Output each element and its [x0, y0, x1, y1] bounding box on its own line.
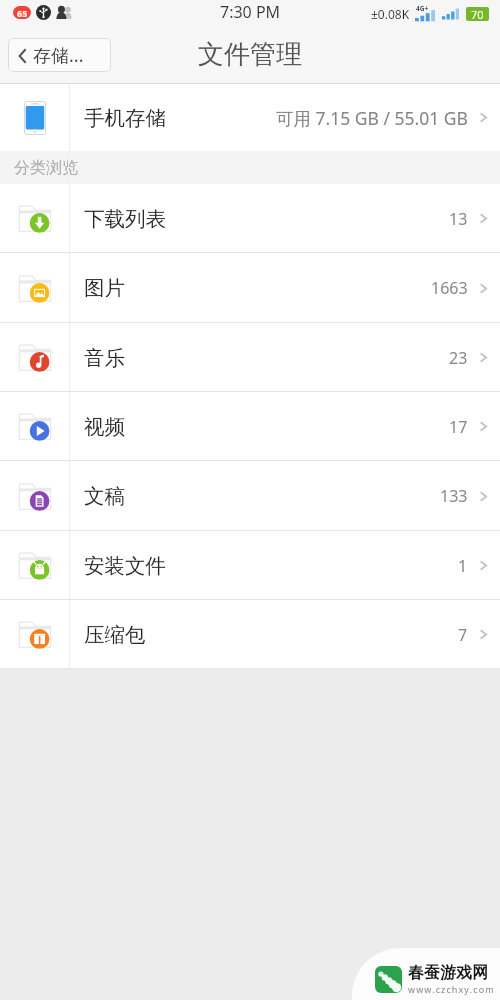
staticText: 65	[17, 7, 28, 19]
button[interactable]: 视频	[0, 392, 500, 461]
staticText: 17	[449, 416, 468, 438]
staticText: 1663	[431, 277, 468, 299]
staticText: 13	[449, 208, 468, 230]
staticText: 7:30 PM	[220, 1, 281, 23]
staticText: 可用 7.15 GB / 55.01 GB	[276, 106, 468, 130]
staticText: ±0.08K	[371, 6, 410, 22]
staticText: 70	[471, 7, 484, 21]
staticText: 下载列表	[84, 206, 166, 232]
staticText: 音乐	[84, 345, 125, 371]
staticText: 1	[458, 555, 468, 577]
staticText: 视频	[84, 414, 125, 440]
staticText: 图片	[84, 275, 125, 301]
staticText: 分类浏览	[14, 158, 78, 178]
staticText: 手机存储	[84, 105, 166, 131]
staticText: 文件管理	[198, 38, 302, 71]
staticText: 23	[449, 347, 468, 369]
button[interactable]: 安装文件	[0, 531, 500, 600]
staticText: 压缩包	[84, 622, 146, 648]
staticText: 133	[440, 485, 468, 507]
button[interactable]: 压缩包	[0, 600, 500, 669]
button[interactable]: 图片	[0, 253, 500, 323]
staticText: www.czchxy.com	[408, 983, 495, 995]
staticText: 4G+	[416, 4, 429, 13]
button[interactable]: Back to 存储	[8, 38, 111, 72]
button[interactable]: 音乐	[0, 323, 500, 392]
staticText: 存储...	[33, 43, 84, 68]
staticText: 春蚕游戏网	[408, 963, 488, 983]
button[interactable]: 文稿	[0, 461, 500, 531]
staticText: 文稿	[84, 483, 125, 509]
staticText: 安装文件	[84, 553, 166, 579]
button[interactable]: 手机存储	[0, 84, 500, 151]
button[interactable]: 下载列表	[0, 184, 500, 253]
staticText: 7	[458, 624, 468, 646]
